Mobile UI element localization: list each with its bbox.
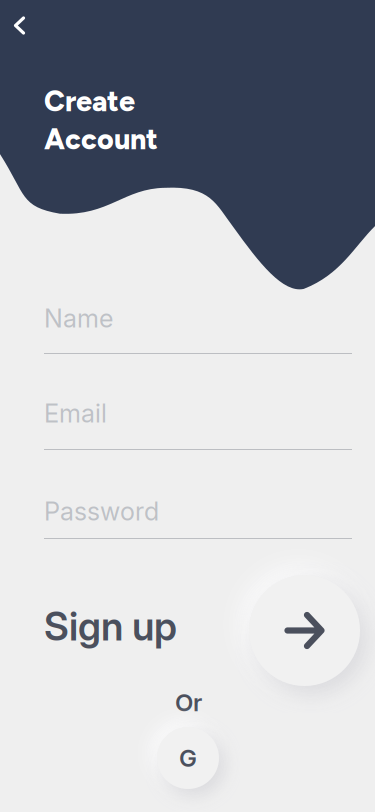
staticText: Email	[44, 398, 107, 429]
staticText: Sign up	[44, 603, 177, 650]
staticText: G	[179, 743, 197, 772]
staticText: Name	[44, 303, 113, 334]
button[interactable]: Continue	[249, 575, 360, 686]
staticText: Password	[44, 496, 159, 527]
button[interactable]: Email	[44, 388, 352, 455]
button[interactable]: Continue with Google	[157, 727, 219, 789]
button[interactable]: Back	[0, 0, 44, 50]
staticText: Or	[175, 688, 202, 717]
staticText: Create	[44, 84, 135, 118]
button[interactable]: Password	[44, 486, 352, 544]
button[interactable]: Name	[44, 293, 352, 359]
staticText: Account	[44, 122, 158, 156]
